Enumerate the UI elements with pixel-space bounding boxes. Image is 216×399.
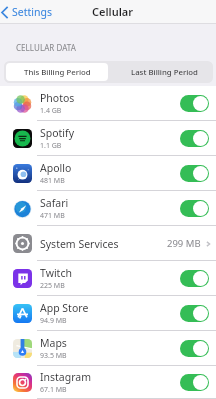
staticText: App Store	[40, 301, 89, 315]
staticText: Photos	[40, 91, 75, 105]
staticText: Last Billing Period	[131, 67, 198, 78]
staticText: Spotify	[40, 126, 75, 140]
staticText: 471 MB	[40, 211, 65, 221]
button[interactable]: App Store	[0, 296, 216, 331]
button[interactable]: Toggle cellular data	[180, 130, 209, 147]
staticText: Settings	[12, 5, 52, 19]
button[interactable]: Maps	[0, 331, 216, 366]
button[interactable]: Twitch	[0, 261, 216, 296]
button[interactable]: System Services	[0, 226, 216, 261]
button[interactable]: Apollo	[0, 156, 216, 191]
button[interactable]: Settings	[0, 3, 54, 21]
staticText: Instagram	[40, 370, 92, 384]
staticText: 1.1 GB	[40, 141, 62, 151]
staticText: 1.4 GB	[40, 106, 62, 116]
button[interactable]: This Billing Period	[6, 63, 108, 81]
staticText: Maps	[40, 336, 67, 350]
staticText: 481 MB	[40, 176, 65, 186]
staticText: 299 MB	[167, 237, 201, 250]
staticText: 67.1 MB	[40, 385, 67, 395]
staticText: 225 MB	[40, 281, 65, 291]
staticText: System Services	[40, 237, 167, 251]
button[interactable]: Spotify	[0, 121, 216, 156]
button[interactable]: Toggle cellular data	[180, 95, 209, 112]
button[interactable]: Toggle cellular data	[180, 305, 209, 322]
staticText: Apollo	[40, 161, 72, 175]
button[interactable]: Instagram	[0, 366, 216, 399]
staticText: Twitch	[40, 266, 72, 280]
button[interactable]: Toggle cellular data	[180, 374, 209, 391]
staticText: CELLULAR DATA	[16, 42, 76, 53]
button[interactable]: Toggle cellular data	[180, 340, 209, 357]
button[interactable]: Toggle cellular data	[180, 165, 209, 182]
button[interactable]: Toggle cellular data	[180, 200, 209, 217]
staticText: 94.9 MB	[40, 316, 67, 326]
staticText: 93.5 MB	[40, 351, 67, 361]
button[interactable]: Last Billing Period	[108, 63, 211, 81]
button[interactable]: Safari	[0, 191, 216, 226]
staticText: Safari	[40, 196, 69, 210]
button[interactable]: Toggle cellular data	[180, 270, 209, 287]
staticText: Cellular	[92, 4, 134, 19]
button[interactable]: Photos	[0, 86, 216, 121]
staticText: This Billing Period	[24, 67, 91, 78]
